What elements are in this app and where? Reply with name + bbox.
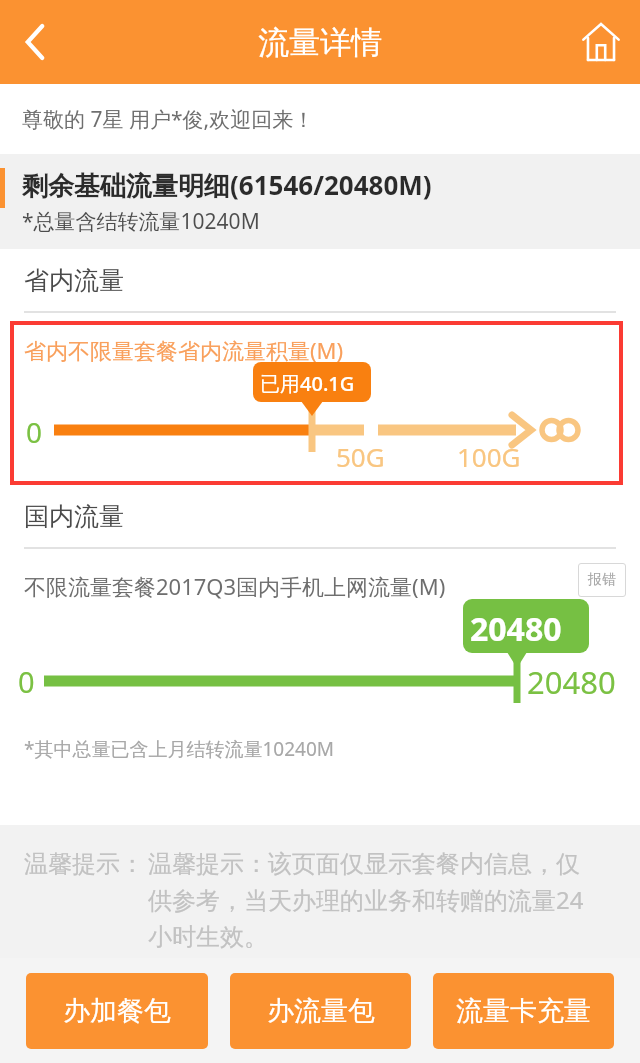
staticText: *总量含结转流量10240M bbox=[22, 207, 260, 236]
staticText: 0 bbox=[26, 413, 43, 451]
staticText: 0 bbox=[18, 662, 35, 701]
button[interactable]: Home bbox=[562, 0, 640, 84]
staticText: 办流量包 bbox=[267, 994, 375, 1028]
staticText: 100G bbox=[457, 439, 521, 474]
staticText: 流量详情 bbox=[258, 23, 382, 62]
staticText: 不限流量套餐2017Q3国内手机上网流量(M) bbox=[24, 571, 446, 601]
staticText: 20480 bbox=[470, 607, 562, 651]
staticText: 报错 bbox=[588, 571, 616, 589]
staticText: 国内流量 bbox=[24, 501, 124, 532]
staticText: 温馨提示： bbox=[24, 849, 144, 879]
button[interactable]: 办加餐包 bbox=[26, 973, 208, 1049]
staticText: 省内不限量套餐省内流量积量(M) bbox=[24, 335, 344, 365]
staticText: 温馨提示：该页面仅显示套餐内信息，仅供参考，当天办理的业务和转赠的流量24小时生… bbox=[148, 849, 598, 952]
staticText: 已用40.1G bbox=[260, 370, 355, 397]
staticText: *其中总量已含上月结转流量10240M bbox=[24, 736, 335, 762]
staticText: 省内流量 bbox=[24, 265, 124, 296]
staticText: 20480 bbox=[527, 661, 616, 703]
staticText: 50G bbox=[336, 439, 385, 474]
button[interactable]: Back bbox=[0, 0, 70, 84]
staticText: 办加餐包 bbox=[63, 994, 171, 1028]
staticText: 尊敬的 7星 用户*俊,欢迎回来！ bbox=[22, 105, 315, 134]
button[interactable]: 办流量包 bbox=[230, 973, 411, 1049]
button[interactable]: 报错 bbox=[578, 563, 626, 597]
staticText: 流量卡充量 bbox=[456, 994, 591, 1028]
staticText: 剩余基础流量明细(61546/20480M) bbox=[22, 167, 432, 203]
button[interactable]: 流量卡充量 bbox=[433, 973, 614, 1049]
